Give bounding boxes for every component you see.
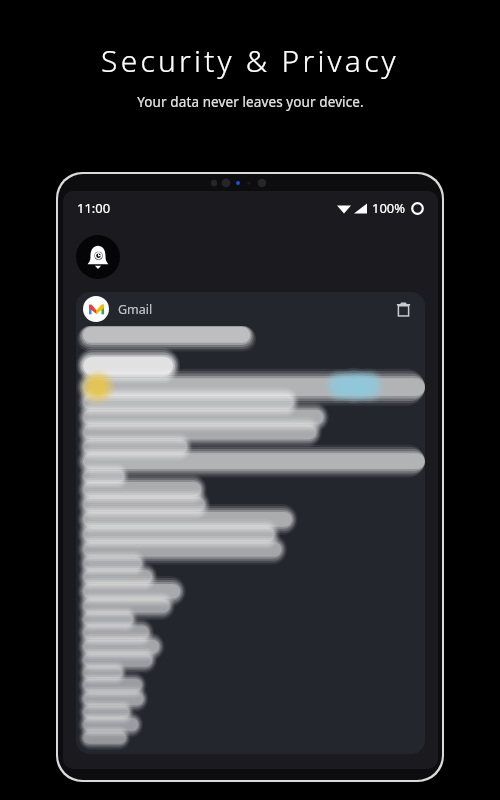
- button[interactable]: Snoozed notification: [76, 235, 120, 279]
- button[interactable]: Delete: [392, 298, 414, 320]
- staticText: Security & Privacy: [101, 40, 399, 81]
- staticText: Gmail: [118, 301, 153, 318]
- staticText: 100%: [372, 199, 406, 217]
- staticText: Your data never leaves your device.: [137, 93, 364, 111]
- button[interactable]: Gmail: [76, 292, 425, 754]
- staticText: 11:00: [77, 199, 111, 217]
